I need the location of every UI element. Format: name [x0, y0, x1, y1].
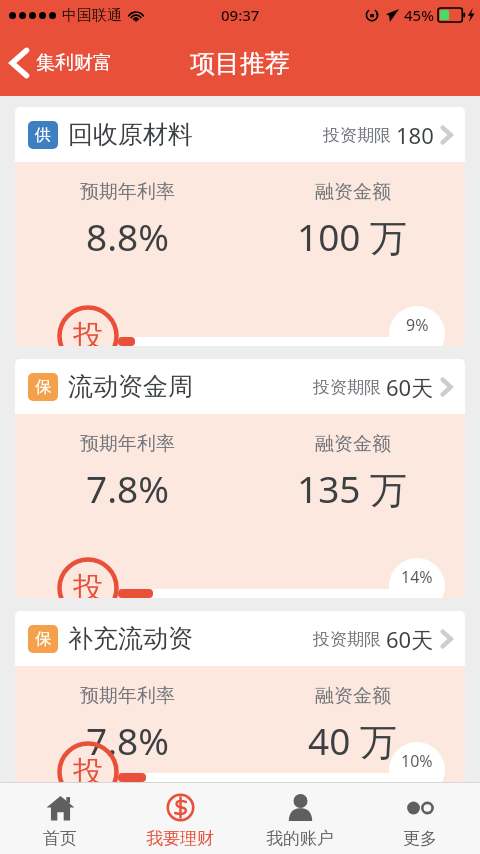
staticText: 补充流动资	[68, 623, 193, 654]
staticText: 投	[73, 317, 103, 346]
staticText: 融资金额	[315, 180, 391, 204]
staticText: 更多	[403, 828, 437, 849]
staticText: 保	[35, 629, 51, 649]
staticText: 投资期限	[313, 375, 386, 398]
staticText: 流动资金周	[68, 371, 193, 402]
staticText: 我的账户	[266, 828, 334, 849]
staticText: 60天	[386, 624, 434, 654]
staticText: 7.8%	[86, 715, 169, 765]
button[interactable]: 首页	[0, 783, 120, 854]
staticText: 8.8%	[86, 211, 169, 261]
button[interactable]: 保	[15, 611, 465, 782]
staticText: 09:37	[221, 5, 260, 25]
button[interactable]: 保	[15, 359, 465, 598]
staticText: 9%	[406, 314, 429, 336]
staticText: 投资期限	[313, 627, 386, 650]
button[interactable]: 我要理财	[120, 783, 240, 854]
button[interactable]: 我的账户	[240, 783, 360, 854]
staticText: 首页	[43, 828, 77, 849]
staticText: 供	[35, 125, 51, 145]
staticText: 集利财富	[36, 51, 112, 75]
staticText: 7.8%	[86, 463, 169, 513]
staticText: 100 万	[297, 211, 408, 262]
staticText: 中国联通	[62, 6, 122, 25]
staticText: 我要理财	[146, 828, 214, 849]
staticText: 保	[35, 377, 51, 397]
staticText: 投	[73, 569, 103, 598]
staticText: 项目推荐	[190, 48, 290, 79]
staticText: 预期年利率	[80, 432, 175, 456]
button[interactable]: 更多	[360, 783, 480, 854]
staticText: 14%	[401, 566, 433, 588]
staticText: 回收原材料	[68, 119, 193, 150]
staticText: 预期年利率	[80, 180, 175, 204]
staticText: 投	[73, 753, 103, 782]
staticText: 融资金额	[315, 432, 391, 456]
staticText: 60天	[386, 372, 434, 402]
staticText: 45%	[404, 5, 434, 25]
staticText: 10%	[401, 750, 433, 772]
staticText: 135 万	[297, 463, 408, 514]
staticText: 融资金额	[315, 684, 391, 708]
staticText: 180	[396, 120, 434, 150]
button[interactable]: 返回 集利财富	[0, 40, 122, 86]
button[interactable]: 供	[15, 107, 465, 346]
staticText: 40 万	[308, 715, 397, 766]
staticText: 投资期限	[323, 123, 396, 146]
staticText: 预期年利率	[80, 684, 175, 708]
